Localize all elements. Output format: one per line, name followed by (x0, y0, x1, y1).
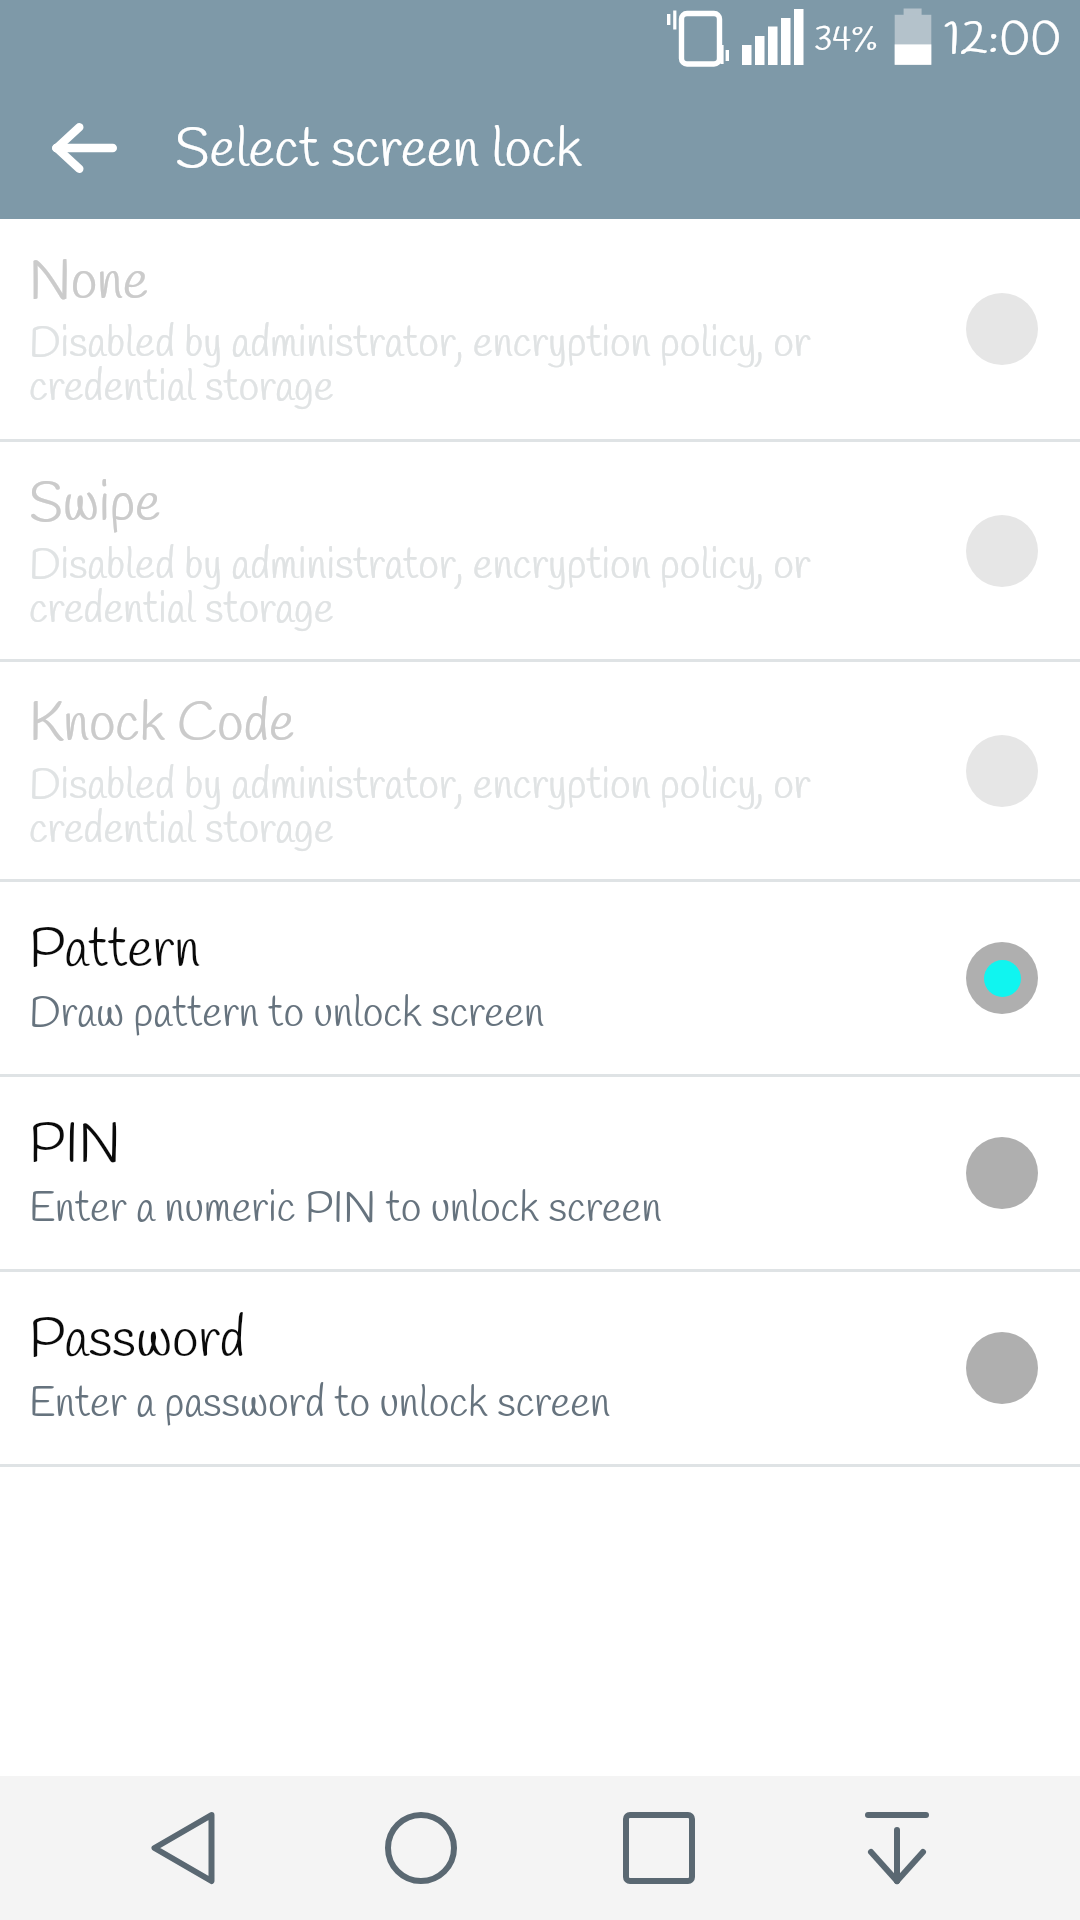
button[interactable]: Navigate up (20, 85, 148, 205)
button[interactable]: Knock Code (0, 662, 1080, 879)
button[interactable]: Hide navigation bar (778, 1776, 1016, 1920)
staticText: Enter a password to unlock screen (29, 1377, 611, 1433)
staticText: None (29, 248, 149, 320)
staticText: Knock Code (29, 690, 295, 762)
staticText: Pattern (29, 916, 200, 988)
staticText: Password (29, 1306, 246, 1378)
staticText: Disabled by administrator, encryption po… (29, 759, 811, 859)
button[interactable]: Home (302, 1776, 540, 1920)
staticText: Disabled by administrator, encryption po… (29, 539, 811, 639)
button[interactable]: Password (0, 1272, 1080, 1464)
staticText: Draw pattern to unlock screen (29, 987, 545, 1043)
staticText: Select screen lock (175, 115, 582, 188)
button[interactable]: Recent apps (540, 1776, 778, 1920)
staticText: 12:00 (944, 9, 1062, 73)
button[interactable]: Pattern (0, 882, 1080, 1074)
staticText: 34% (814, 17, 878, 64)
staticText: Enter a numeric PIN to unlock screen (29, 1182, 662, 1238)
button[interactable]: PIN (0, 1077, 1080, 1269)
staticText: PIN (29, 1111, 121, 1183)
button[interactable]: Swipe (0, 442, 1080, 659)
staticText: Disabled by administrator, encryption po… (29, 317, 811, 417)
staticText: Swipe (29, 470, 161, 542)
button[interactable]: Back (64, 1776, 302, 1920)
button[interactable]: None (0, 219, 1080, 439)
